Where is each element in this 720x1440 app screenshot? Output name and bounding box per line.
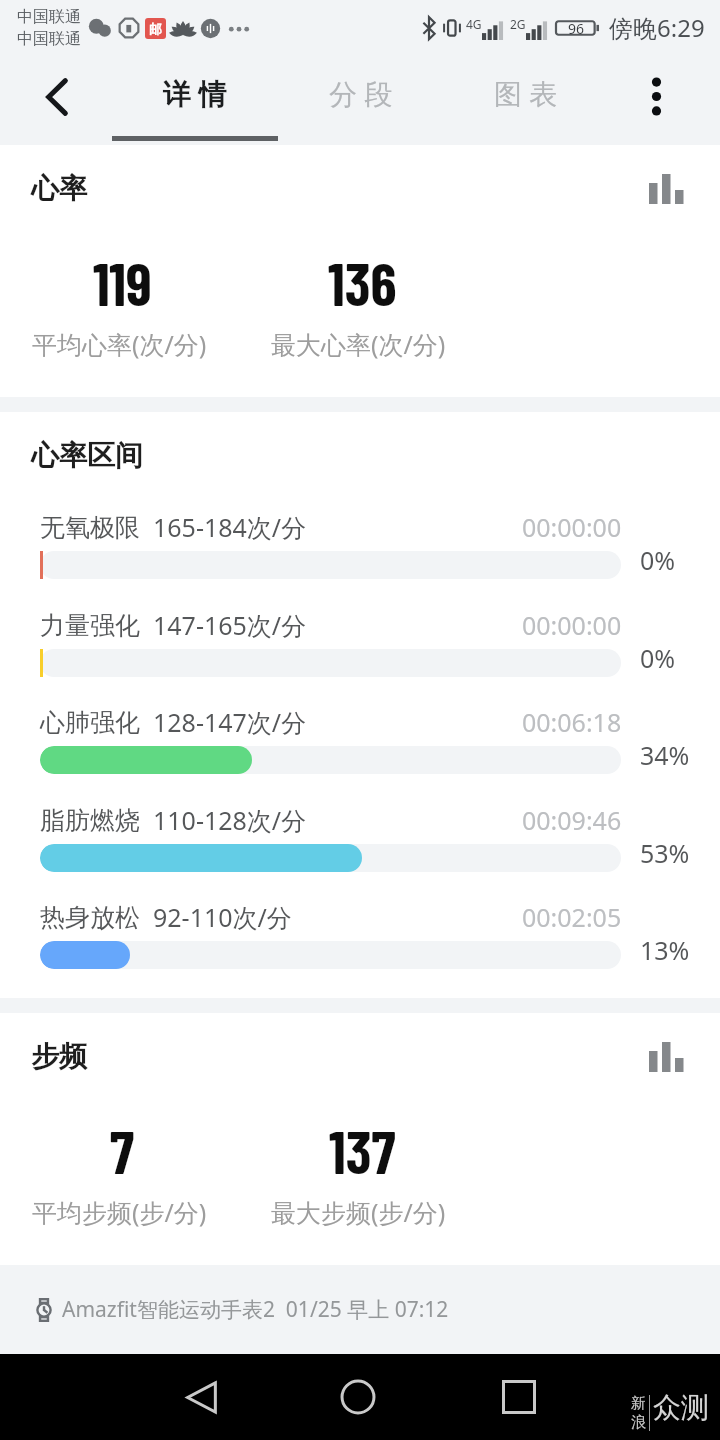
staticText: 00:02:05 bbox=[522, 900, 622, 934]
staticText: 心率区间 bbox=[31, 438, 143, 473]
staticText: 步频 bbox=[31, 1039, 87, 1074]
staticText: 34% bbox=[640, 738, 690, 766]
button[interactable]: 图 表 bbox=[443, 55, 609, 145]
staticText: 00:06:18 bbox=[522, 705, 622, 739]
button[interactable]: 分 段 bbox=[278, 55, 444, 145]
button[interactable]: Back bbox=[20, 55, 96, 145]
staticText: 4G bbox=[466, 16, 482, 32]
staticText: 中国联通 bbox=[17, 7, 81, 27]
staticText: 119 bbox=[93, 247, 152, 318]
staticText: 165-184次/分 bbox=[153, 510, 307, 544]
staticText: 0% bbox=[640, 543, 676, 571]
staticText: 13% bbox=[640, 933, 690, 961]
staticText: 0% bbox=[640, 641, 676, 669]
staticText: 详 情 bbox=[163, 74, 227, 112]
staticText: 00:09:46 bbox=[522, 803, 622, 837]
staticText: 128-147次/分 bbox=[153, 705, 307, 739]
staticText: 热身放松 bbox=[40, 902, 140, 933]
staticText: 2G bbox=[510, 16, 526, 32]
button[interactable]: Chart bbox=[635, 159, 695, 219]
staticText: 最大步频(步/分) bbox=[271, 1195, 446, 1229]
staticText: 邮 bbox=[149, 21, 162, 37]
staticText: 137 bbox=[329, 1115, 396, 1186]
staticText: 110-128次/分 bbox=[153, 803, 307, 837]
staticText: 96 bbox=[568, 19, 585, 38]
staticText: 分 段 bbox=[329, 74, 393, 112]
staticText: 心率 bbox=[31, 171, 87, 206]
staticText: 53% bbox=[640, 836, 690, 864]
staticText: 平均心率(次/分) bbox=[32, 327, 207, 361]
staticText: 新 bbox=[631, 1394, 646, 1413]
staticText: 众测 bbox=[653, 1390, 709, 1425]
staticText: 图 表 bbox=[494, 74, 558, 112]
button[interactable]: Home bbox=[322, 1354, 394, 1440]
button[interactable]: 详 情 bbox=[112, 55, 278, 145]
staticText: 傍晚6:29 bbox=[609, 11, 705, 44]
staticText: 136 bbox=[328, 247, 397, 318]
staticText: 7 bbox=[110, 1115, 135, 1186]
button[interactable]: Back bbox=[165, 1354, 237, 1440]
staticText: 00:00:00 bbox=[522, 510, 622, 544]
staticText: 无氧极限 bbox=[40, 512, 140, 543]
button[interactable]: Chart bbox=[635, 1027, 695, 1087]
button[interactable]: Recents bbox=[483, 1354, 555, 1440]
staticText: 脂肪燃烧 bbox=[40, 805, 140, 836]
button[interactable]: More options bbox=[622, 55, 698, 145]
staticText: Amazfit智能运动手表2 01/25 早上 07:12 bbox=[62, 1295, 449, 1324]
staticText: 浪 bbox=[631, 1413, 646, 1432]
staticText: 力量强化 bbox=[40, 610, 140, 641]
staticText: 147-165次/分 bbox=[153, 608, 307, 642]
staticText: 平均步频(步/分) bbox=[32, 1195, 207, 1229]
staticText: 92-110次/分 bbox=[153, 900, 292, 934]
staticText: 00:00:00 bbox=[522, 608, 622, 642]
staticText: 最大心率(次/分) bbox=[271, 327, 446, 361]
staticText: 心肺强化 bbox=[40, 707, 140, 738]
staticText: 中国联通 bbox=[17, 29, 81, 49]
